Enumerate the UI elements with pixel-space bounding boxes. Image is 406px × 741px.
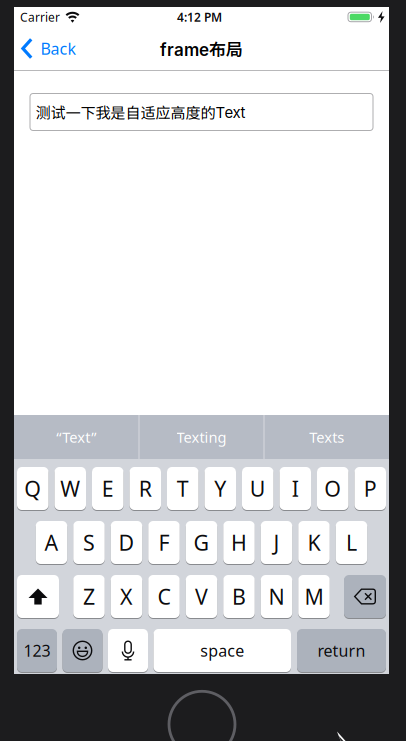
staticText: L — [346, 528, 357, 557]
staticText: S — [83, 528, 95, 557]
staticText: E — [102, 474, 114, 503]
staticText: D — [118, 528, 134, 557]
staticText: X — [120, 582, 133, 611]
staticText: B — [232, 582, 246, 611]
button[interactable]: space — [153, 629, 291, 672]
staticText: Z — [83, 582, 95, 611]
button[interactable]: W — [54, 467, 86, 510]
staticText: I — [292, 474, 299, 503]
staticText: Y — [214, 474, 226, 503]
staticText: Texts — [309, 427, 344, 447]
button[interactable]: L — [336, 521, 367, 564]
staticText: C — [157, 582, 170, 611]
button[interactable]: A — [36, 521, 67, 564]
button[interactable]: R — [129, 467, 161, 510]
button[interactable]: Texting — [139, 415, 263, 459]
button[interactable] — [108, 629, 148, 672]
button[interactable]: U — [242, 467, 273, 510]
staticText: H — [231, 528, 247, 557]
staticText: W — [60, 474, 80, 503]
button[interactable] — [62, 629, 102, 672]
button[interactable]: “Text” — [14, 415, 138, 459]
staticText: P — [364, 474, 377, 503]
button[interactable]: X — [111, 575, 142, 618]
button[interactable]: return — [297, 629, 386, 672]
button[interactable] — [344, 575, 386, 618]
staticText: T — [177, 474, 189, 503]
staticText: O — [324, 474, 341, 503]
button[interactable]: H — [223, 521, 255, 564]
staticText: 4:12 PM — [177, 9, 222, 25]
staticText: Q — [24, 474, 41, 503]
button[interactable]: O — [317, 467, 348, 510]
staticText: G — [193, 528, 209, 557]
staticText: Texting — [176, 427, 226, 447]
button[interactable]: Q — [17, 467, 48, 510]
button[interactable]: P — [354, 467, 386, 510]
button[interactable]: N — [261, 575, 292, 618]
button[interactable]: J — [261, 521, 292, 564]
staticText: A — [44, 528, 58, 557]
staticText: J — [273, 528, 279, 557]
staticText: R — [139, 474, 152, 503]
button[interactable]: E — [92, 467, 123, 510]
button[interactable]: Back — [20, 38, 76, 59]
staticText: 123 — [23, 640, 50, 661]
button[interactable]: Texts — [264, 415, 389, 459]
button[interactable]: 测试一下我是自适应高度的Text — [29, 93, 373, 131]
staticText: Back — [40, 38, 76, 59]
button[interactable]: D — [111, 521, 142, 564]
button[interactable]: F — [148, 521, 180, 564]
staticText: return — [317, 640, 365, 661]
staticText: “Text” — [56, 427, 96, 447]
button[interactable]: S — [73, 521, 105, 564]
button[interactable]: Y — [204, 467, 236, 510]
staticText: V — [195, 582, 208, 611]
button[interactable]: C — [148, 575, 180, 618]
button[interactable]: G — [186, 521, 217, 564]
staticText: F — [158, 528, 169, 557]
staticText: U — [250, 474, 266, 503]
staticText: space — [200, 640, 244, 661]
button[interactable]: K — [298, 521, 330, 564]
staticText: frame布局 — [160, 36, 243, 61]
button[interactable]: 123 — [17, 629, 57, 672]
button[interactable]: M — [298, 575, 330, 618]
button[interactable] — [17, 575, 59, 618]
staticText: K — [307, 528, 320, 557]
staticText: M — [304, 582, 323, 611]
staticText: 测试一下我是自适应高度的Text — [35, 101, 245, 123]
button[interactable]: T — [167, 467, 198, 510]
button[interactable]: I — [279, 467, 311, 510]
button[interactable]: B — [223, 575, 255, 618]
staticText: Carrier — [20, 9, 60, 25]
button[interactable]: V — [186, 575, 217, 618]
button[interactable]: Z — [73, 575, 105, 618]
staticText: N — [268, 582, 284, 611]
